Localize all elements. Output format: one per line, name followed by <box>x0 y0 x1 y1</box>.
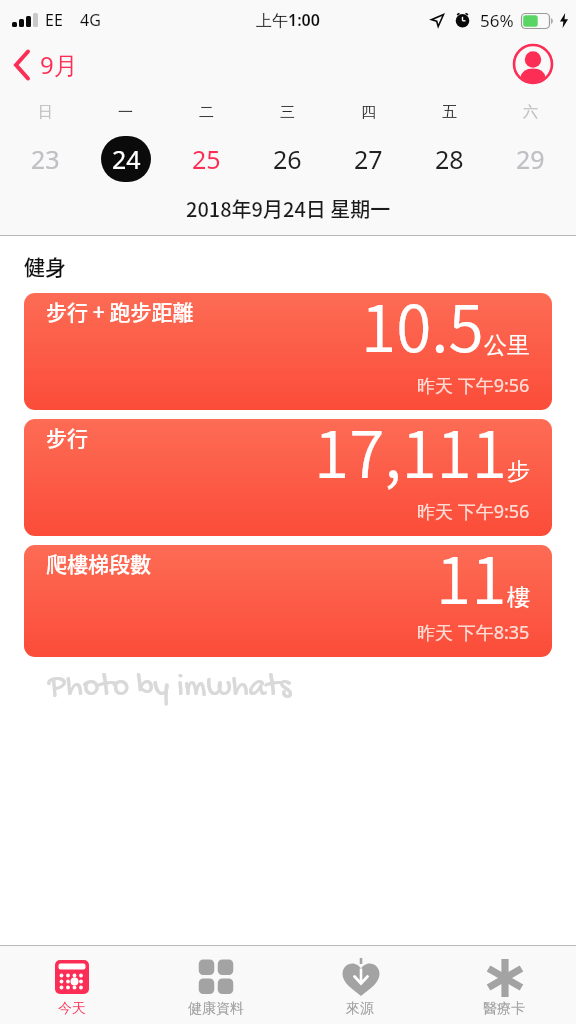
staticText: 二 <box>199 103 214 122</box>
staticText: 一 <box>118 103 133 122</box>
button[interactable]: 健康資料 <box>144 946 288 1024</box>
staticText: 健身 <box>24 251 66 281</box>
button[interactable]: 29 <box>490 136 571 182</box>
staticText: 26 <box>273 142 302 176</box>
button[interactable] <box>513 44 553 84</box>
button[interactable]: 24 <box>85 136 166 182</box>
button[interactable]: 今天 <box>0 946 144 1024</box>
staticText: 四 <box>361 103 376 122</box>
staticText: 樓 <box>507 583 530 612</box>
staticText: 日 <box>38 103 53 122</box>
staticText: 昨天 下午9:56 <box>417 373 530 398</box>
staticText: 五 <box>442 103 457 122</box>
button[interactable]: 27 <box>328 136 409 182</box>
staticText: Photo by imwhats <box>48 669 292 707</box>
button[interactable]: 9月 <box>12 48 78 81</box>
button[interactable]: 25 <box>166 136 247 182</box>
staticText: 17,111 <box>314 419 507 497</box>
staticText: 2018年9月24日 星期一 <box>186 194 391 223</box>
staticText: 昨天 下午8:35 <box>417 620 530 645</box>
staticText: 三 <box>280 103 295 122</box>
button[interactable]: 爬樓梯段數 <box>24 545 552 657</box>
button[interactable]: 23 <box>5 136 85 182</box>
staticText: 步行 <box>46 422 88 452</box>
button[interactable]: 28 <box>409 136 490 182</box>
staticText: 24 <box>112 142 141 176</box>
staticText: 4G <box>80 9 101 31</box>
staticText: 23 <box>31 142 60 176</box>
staticText: 來源 <box>346 1000 374 1018</box>
staticText: 昨天 下午9:56 <box>417 499 530 524</box>
staticText: 28 <box>435 142 464 176</box>
staticText: 步 <box>507 457 530 486</box>
staticText: 公里 <box>484 331 530 360</box>
button[interactable]: 步行 + 跑步距離 <box>24 293 552 410</box>
staticText: 醫療卡 <box>483 1000 525 1018</box>
staticText: 29 <box>516 142 545 176</box>
staticText: 今天 <box>58 1000 86 1018</box>
staticText: 25 <box>192 142 221 176</box>
staticText: 健康資料 <box>188 1000 244 1018</box>
staticText: 爬樓梯段數 <box>46 548 151 578</box>
staticText: 27 <box>354 142 383 176</box>
staticText: 步行 + 跑步距離 <box>46 296 194 326</box>
staticText: 11 <box>436 545 507 623</box>
button[interactable]: 26 <box>247 136 328 182</box>
staticText: 六 <box>523 103 538 122</box>
staticText: EE <box>45 9 63 31</box>
button[interactable]: 來源 <box>288 946 432 1024</box>
staticText: 10.5 <box>361 293 484 371</box>
staticText: 上午1:00 <box>256 9 320 31</box>
staticText: 56% <box>480 9 514 32</box>
button[interactable]: 醫療卡 <box>432 946 576 1024</box>
button[interactable]: 步行 <box>24 419 552 536</box>
staticText: 9月 <box>40 48 78 81</box>
